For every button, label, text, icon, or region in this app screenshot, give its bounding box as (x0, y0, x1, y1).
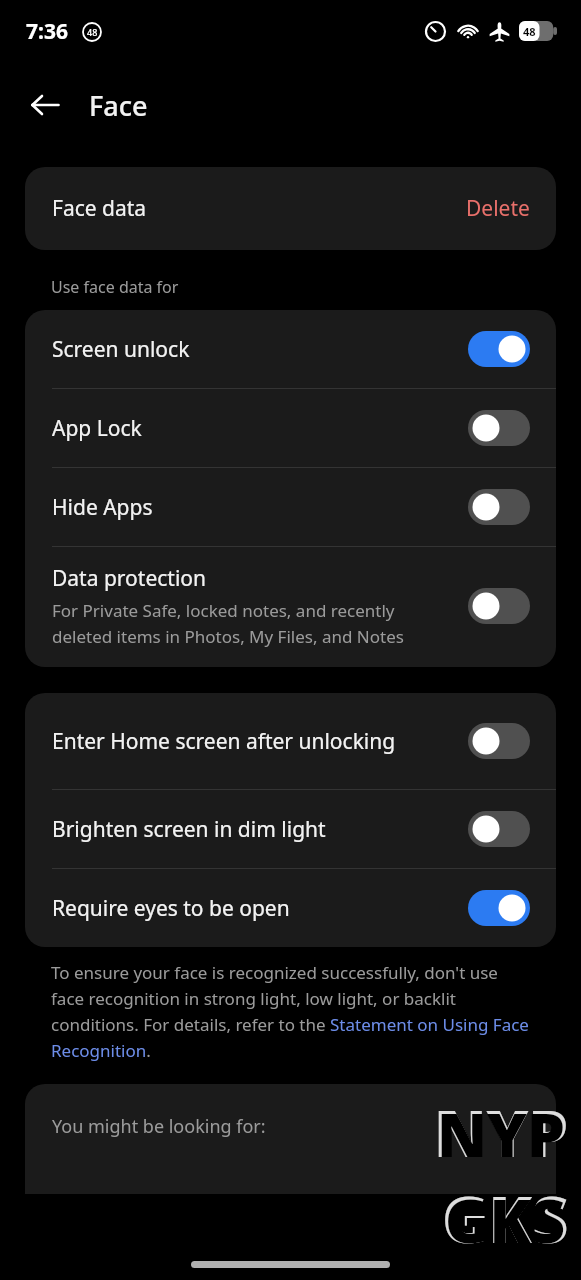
staticText: Face data (52, 194, 147, 223)
staticText: 48 (87, 26, 98, 38)
button[interactable]: On (468, 890, 530, 926)
staticText: For Private Safe, locked notes, and rece… (52, 599, 454, 648)
button[interactable]: Face data (25, 167, 556, 250)
button[interactable]: Back (21, 81, 69, 129)
button[interactable]: App Lock (25, 389, 556, 467)
button[interactable]: Hide Apps (25, 468, 556, 546)
staticText: You might be looking for: (52, 1114, 266, 1139)
staticText: NYP (437, 1093, 565, 1175)
staticText: App Lock (52, 414, 454, 443)
staticText: Hide Apps (52, 493, 454, 522)
button[interactable]: Screen unlock (25, 310, 556, 388)
staticText: Face (89, 87, 148, 124)
button[interactable]: Require eyes to be open (25, 869, 556, 947)
staticText: Screen unlock (52, 335, 454, 364)
button[interactable]: Off (468, 410, 530, 446)
staticText: To ensure your face is recognized succes… (51, 961, 530, 1062)
staticText: GKS (442, 1176, 569, 1262)
staticText: Data protection (52, 564, 206, 593)
staticText: Brighten screen in dim light (52, 815, 454, 844)
button[interactable]: Off (468, 811, 530, 847)
button[interactable]: Off (468, 489, 530, 525)
button[interactable]: Enter Home screen after unlocking (25, 693, 556, 789)
staticText: NYP (434, 1090, 569, 1176)
staticText: Enter Home screen after unlocking (52, 727, 454, 756)
button[interactable]: You might be looking for: (25, 1084, 556, 1194)
button[interactable]: Off (468, 588, 530, 624)
staticText: GKS (445, 1179, 566, 1261)
staticText: Require eyes to be open (52, 894, 454, 923)
button[interactable]: On (468, 331, 530, 367)
staticText: Use face data for (51, 276, 179, 298)
staticText: 7:36 (26, 17, 68, 46)
staticText: Delete (466, 194, 530, 223)
button[interactable]: Data protection (25, 547, 556, 667)
button[interactable]: Off (468, 723, 530, 759)
button[interactable]: Brighten screen in dim light (25, 790, 556, 868)
staticText: 48 (523, 24, 536, 39)
